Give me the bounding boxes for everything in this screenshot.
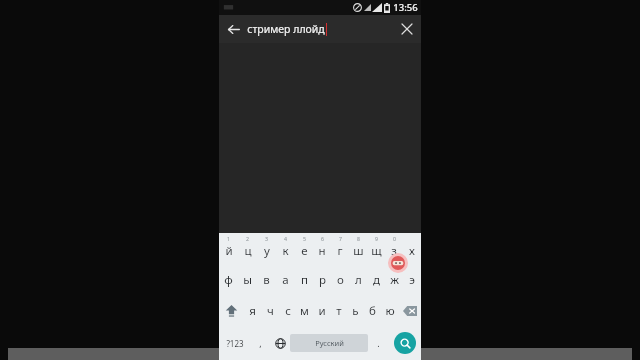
button[interactable]: с [279, 295, 296, 326]
button[interactable]: ы [238, 264, 257, 295]
button[interactable]: л [349, 264, 367, 295]
staticText: 9 [375, 235, 378, 242]
staticText: к [282, 243, 289, 259]
staticText: д [373, 272, 380, 288]
button[interactable]: д [367, 264, 385, 295]
staticText: х [409, 243, 415, 259]
button[interactable]: Emoji suggestion [388, 253, 408, 273]
button[interactable]: б [364, 295, 381, 326]
staticText: ч [267, 303, 274, 319]
button[interactable]: Search [394, 332, 416, 354]
staticText: . [377, 337, 380, 349]
staticText: 2 [246, 235, 249, 242]
staticText: , [259, 337, 262, 349]
staticText: з [391, 243, 397, 259]
button[interactable]: 9 [367, 233, 385, 264]
button[interactable]: Русский [290, 334, 368, 352]
staticText: а [282, 272, 289, 288]
button[interactable]: в [257, 264, 276, 295]
button[interactable]: 7 [331, 233, 349, 264]
button[interactable]: м [296, 295, 313, 326]
staticText: й [225, 243, 233, 259]
staticText: н [318, 243, 326, 259]
staticText: м [300, 303, 309, 319]
button[interactable]: ж [385, 264, 403, 295]
button[interactable]: ю [381, 295, 398, 326]
staticText: 3 [265, 235, 268, 242]
staticText: б [369, 303, 376, 319]
staticText: ж [390, 272, 399, 288]
button[interactable]: Clear [393, 15, 421, 43]
button[interactable]: т [330, 295, 347, 326]
button[interactable]: 2 [238, 233, 257, 264]
staticText: 5 [303, 235, 306, 242]
button[interactable]: 1 [219, 233, 238, 264]
staticText: 6 [321, 235, 324, 242]
staticText: 13:56 [393, 1, 418, 14]
staticText: с [285, 303, 291, 319]
button[interactable]: 5 [295, 233, 313, 264]
staticText: 7 [339, 235, 342, 242]
button[interactable]: ь [347, 295, 364, 326]
button[interactable]: 6 [313, 233, 331, 264]
staticText: в [263, 272, 270, 288]
staticText: ц [244, 243, 252, 259]
button[interactable]: ?123 [219, 326, 251, 360]
staticText: ю [385, 303, 395, 319]
button[interactable]: . [368, 326, 388, 360]
button[interactable]: п [295, 264, 313, 295]
button[interactable]: х [403, 233, 421, 264]
staticText: у [264, 243, 270, 259]
staticText: ?123 [226, 338, 244, 349]
button[interactable]: 0 [385, 233, 403, 264]
staticText: э [409, 272, 415, 288]
button[interactable]: а [276, 264, 295, 295]
button[interactable]: Shift [219, 295, 243, 326]
button[interactable]: о [331, 264, 349, 295]
staticText: Русский [315, 338, 344, 348]
staticText: я [249, 303, 256, 319]
staticText: щ [371, 243, 382, 259]
button[interactable]: р [313, 264, 331, 295]
staticText: 1 [227, 235, 230, 242]
button[interactable]: ф [219, 264, 238, 295]
staticText: л [355, 272, 362, 288]
staticText: р [319, 272, 326, 288]
staticText: стример ллойд [247, 22, 325, 36]
button[interactable]: 4 [276, 233, 295, 264]
button[interactable]: 3 [257, 233, 276, 264]
button[interactable]: и [313, 295, 330, 326]
button[interactable]: Back [219, 15, 247, 43]
staticText: т [336, 303, 342, 319]
button[interactable]: Backspace [398, 295, 421, 326]
button[interactable]: 8 [349, 233, 367, 264]
staticText: 4 [284, 235, 287, 242]
staticText: ш [353, 243, 364, 259]
button[interactable]: э [403, 264, 421, 295]
staticText: 0 [393, 235, 396, 242]
button[interactable]: я [243, 295, 261, 326]
staticText: 8 [357, 235, 360, 242]
staticText: п [301, 272, 308, 288]
staticText: о [337, 272, 344, 288]
staticText: ь [352, 303, 359, 319]
button[interactable]: Change language [270, 326, 290, 360]
staticText: ф [224, 272, 233, 288]
staticText: е [301, 243, 308, 259]
button[interactable]: ч [261, 295, 279, 326]
staticText: ы [243, 272, 252, 288]
button[interactable]: , [251, 326, 270, 360]
staticText: и [318, 303, 326, 319]
staticText: г [337, 243, 343, 259]
